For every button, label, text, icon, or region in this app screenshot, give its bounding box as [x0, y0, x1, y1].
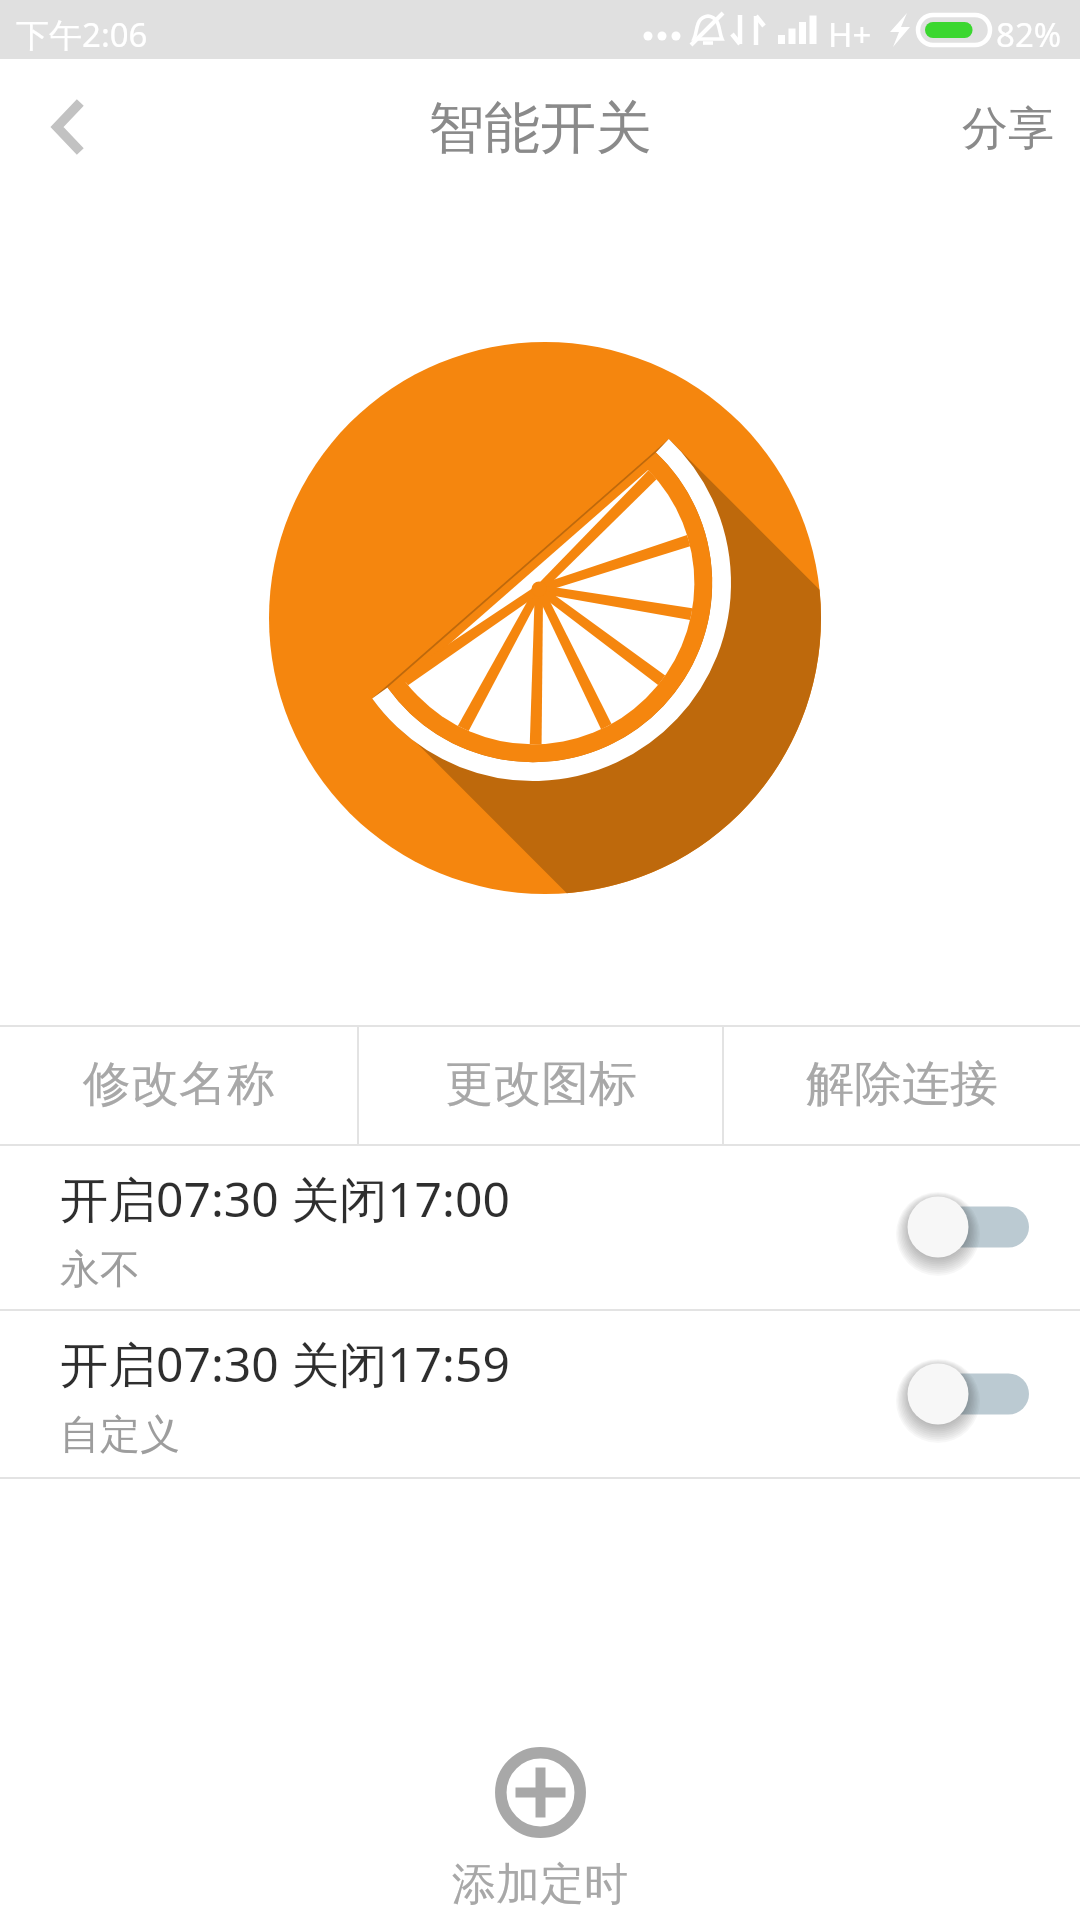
button[interactable]: 开启07:30 关闭17:00 [0, 1146, 1080, 1309]
button[interactable]: 开启07:30 关闭17:59 [0, 1311, 1080, 1477]
button[interactable]: 分享 [943, 75, 1073, 187]
button[interactable]: 添加定时 [452, 1747, 628, 1912]
staticText: 开启07:30 关闭17:59 [60, 1331, 510, 1397]
staticText: 自定义 [60, 1409, 180, 1459]
staticText: 下午2:06 [16, 12, 148, 57]
staticText: 解除连接 [806, 1054, 998, 1114]
staticText: 开启07:30 关闭17:00 [60, 1166, 510, 1232]
button[interactable]: 解除连接 [724, 1027, 1080, 1144]
button[interactable]: Back [11, 72, 123, 182]
button[interactable]: 更改图标 [359, 1027, 722, 1144]
staticText: 82% [996, 12, 1062, 57]
staticText: 更改图标 [445, 1054, 637, 1114]
staticText: 永不 [60, 1244, 140, 1294]
staticText: 修改名称 [83, 1054, 275, 1114]
staticText: H+ [828, 12, 872, 57]
staticText: 分享 [962, 100, 1054, 158]
staticText: 智能开关 [428, 93, 652, 164]
button[interactable]: 修改名称 [0, 1027, 357, 1144]
button[interactable]: Toggle [878, 1350, 1038, 1438]
button[interactable]: Toggle [878, 1183, 1038, 1271]
staticText: 添加定时 [452, 1857, 628, 1912]
